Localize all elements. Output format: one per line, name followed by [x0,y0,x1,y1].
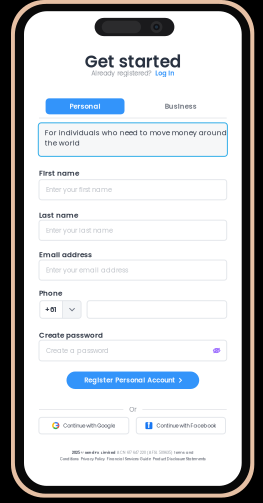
staticText: Enter your first name [46,185,112,194]
staticText: First name [39,168,79,178]
staticText: Terms and [174,450,194,455]
staticText: Continue with Facebook [156,422,216,429]
staticText: Log in [155,69,174,78]
staticText: 2025 © SendFX Limited [72,450,117,455]
staticText: Conditions Privacy Policy Financial Serv… [60,456,206,461]
button[interactable]: Business [141,98,220,114]
button[interactable]: Personal [46,98,124,114]
staticText: Phone [39,288,62,298]
staticText: f [147,420,150,431]
staticText: Business [165,101,197,111]
staticText: Register Personal Account [84,375,175,385]
staticText: For individuals who need to move money a… [45,128,227,148]
staticText: Create a password [46,346,109,355]
staticText: Last name [39,210,78,220]
staticText: Create password [39,330,103,340]
staticText: +61 [45,305,57,314]
button[interactable]: Register Personal Account [66,371,199,389]
button[interactable]: Continue with Google [39,417,129,434]
staticText: Enter your last name [46,226,113,235]
button[interactable]: f [136,417,225,434]
staticText: Email address [39,250,92,260]
button[interactable]: Show password [213,348,227,354]
staticText: Continue with Google [63,422,115,429]
staticText: Get started [85,50,181,73]
staticText: Or [129,405,136,414]
staticText: Personal [70,101,101,111]
staticText: Already registered? [91,69,151,78]
staticText: Enter your email address [46,265,128,275]
staticText: ACN 617 647 220 (AFSL 509635) [117,450,174,455]
button[interactable]: Log in [151,69,174,78]
